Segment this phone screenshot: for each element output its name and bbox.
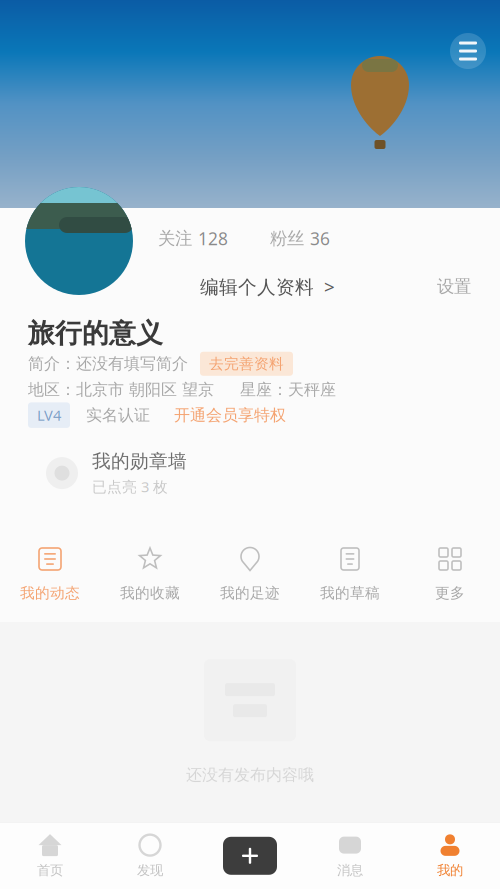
button[interactable]: 编辑个人资料 > bbox=[200, 269, 335, 304]
staticText: 设置 bbox=[437, 276, 471, 297]
staticText: 我的 bbox=[437, 862, 463, 878]
staticText: 还没有发布内容哦 bbox=[186, 765, 314, 785]
staticText: 旅行的意义 bbox=[28, 317, 163, 350]
button[interactable]: 我的足迹 bbox=[200, 524, 300, 622]
button[interactable]: Create bbox=[200, 823, 300, 889]
button[interactable]: 消息 bbox=[300, 823, 400, 889]
button[interactable]: 更多 bbox=[400, 524, 500, 622]
button[interactable]: 我的草稿 bbox=[300, 524, 400, 622]
button[interactable]: 首页 bbox=[0, 823, 100, 889]
staticText: LV4 bbox=[37, 405, 61, 425]
button[interactable]: 设置 bbox=[437, 271, 471, 302]
staticText: 地区：北京市 朝阳区 望京 bbox=[28, 380, 214, 399]
staticText: 去完善资料 bbox=[209, 355, 284, 373]
staticText: 128 bbox=[198, 227, 228, 250]
button[interactable]: 我的动态 bbox=[0, 524, 100, 622]
button[interactable]: 粉丝 bbox=[270, 224, 330, 253]
staticText: 我的动态 bbox=[20, 584, 80, 602]
staticText: 36 bbox=[310, 227, 330, 250]
staticText: 关注 bbox=[158, 228, 192, 249]
staticText: 简介：还没有填写简介 bbox=[28, 354, 188, 374]
button[interactable]: 我的 bbox=[400, 823, 500, 889]
button[interactable]: 我的勋章墙 bbox=[28, 428, 466, 496]
staticText: 实名认证 bbox=[86, 405, 150, 425]
button[interactable]: Menu bbox=[444, 27, 492, 75]
staticText: 消息 bbox=[337, 862, 363, 878]
staticText: 已点亮 3 枚 bbox=[92, 477, 168, 496]
staticText: 我的勋章墙 bbox=[92, 450, 187, 473]
button[interactable]: 发现 bbox=[100, 823, 200, 889]
staticText: 我的草稿 bbox=[320, 584, 380, 602]
button[interactable]: 去完善资料 bbox=[200, 352, 293, 376]
staticText: 首页 bbox=[37, 862, 63, 878]
staticText: 更多 bbox=[435, 584, 465, 602]
staticText: 星座：天秤座 bbox=[240, 380, 336, 399]
staticText: 我的足迹 bbox=[220, 584, 280, 602]
staticText: 开通会员享特权 bbox=[174, 405, 286, 425]
button[interactable]: 我的收藏 bbox=[100, 524, 200, 622]
staticText: 粉丝 bbox=[270, 228, 304, 249]
staticText: 我的收藏 bbox=[120, 584, 180, 602]
staticText: 发现 bbox=[137, 862, 163, 878]
button[interactable]: 关注 bbox=[158, 224, 228, 253]
staticText: 编辑个人资料 > bbox=[200, 274, 335, 299]
button[interactable]: 开通会员享特权 bbox=[174, 405, 286, 425]
